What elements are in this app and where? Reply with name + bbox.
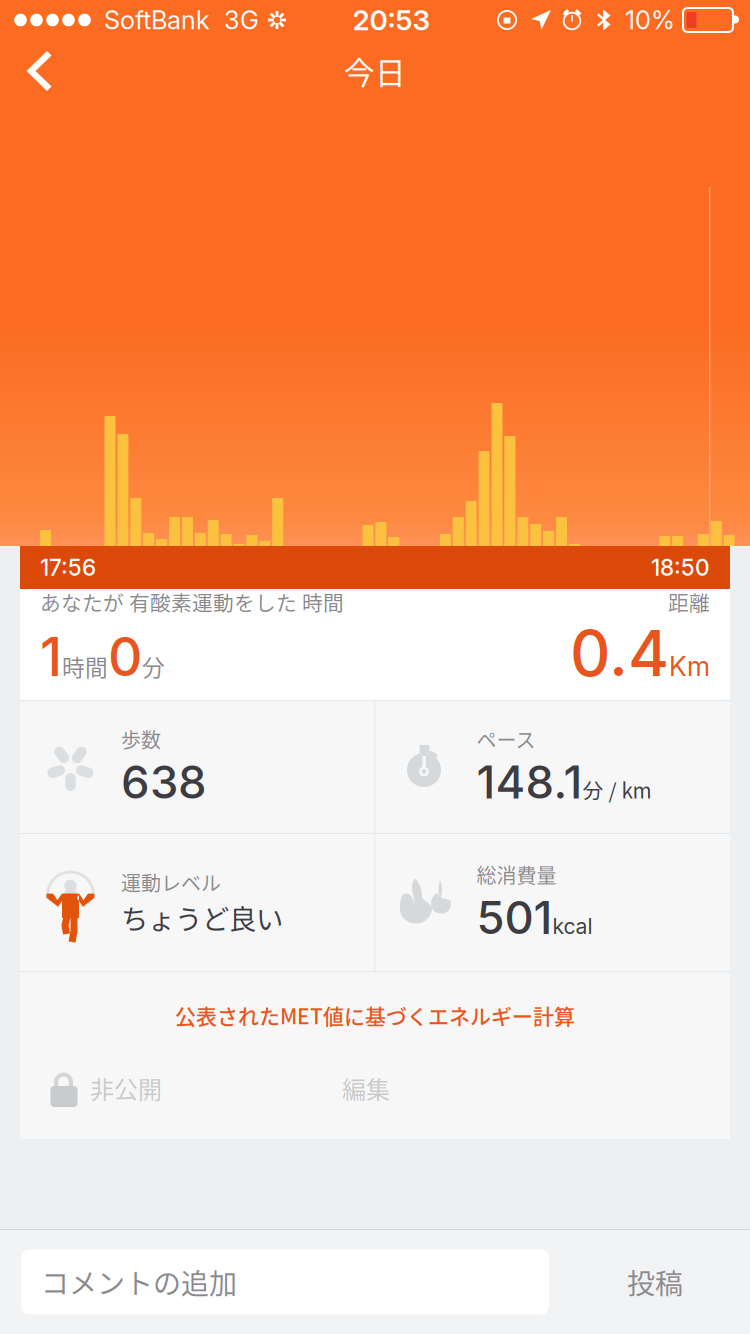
staticText: 距離: [668, 587, 710, 617]
staticText: ちょうど良い: [121, 898, 283, 937]
staticText: 10%: [625, 5, 675, 35]
staticText: 0.4: [570, 615, 669, 691]
staticText: 今日: [344, 49, 406, 93]
staticText: 0: [108, 624, 142, 689]
staticText: 歩数: [121, 725, 161, 754]
button[interactable]: コメントの追加: [21, 1249, 549, 1314]
staticText: ペース: [476, 725, 535, 754]
staticText: 17:56: [40, 554, 96, 581]
button[interactable]: 戻る: [0, 41, 76, 101]
staticText: 総消費量: [476, 860, 556, 889]
staticText: 分 / km: [582, 774, 651, 804]
staticText: 3G: [224, 5, 259, 35]
staticText: 1: [40, 624, 62, 689]
staticText: コメントの追加: [41, 1262, 237, 1302]
staticText: 638: [121, 755, 207, 809]
staticText: 運動レベル: [121, 868, 221, 897]
staticText: 非公開: [90, 1071, 162, 1105]
staticText: 18:50: [651, 554, 710, 581]
staticText: Km: [669, 650, 710, 682]
button[interactable]: 編集: [332, 1065, 400, 1111]
staticText: SoftBank: [104, 5, 210, 35]
staticText: 投稿: [627, 1262, 683, 1302]
staticText: 時間: [62, 650, 108, 682]
staticText: 20:53: [352, 3, 430, 37]
staticText: 公表されたMET値に基づくエネルギー計算: [175, 1000, 575, 1030]
staticText: 148.1: [476, 755, 582, 809]
button[interactable]: 投稿: [585, 1249, 725, 1314]
button[interactable]: 非公開: [20, 1063, 162, 1113]
staticText: あなたが 有酸素運動をした 時間: [40, 587, 344, 617]
staticText: 501: [476, 890, 552, 945]
staticText: 分: [142, 650, 165, 682]
staticText: 編集: [342, 1071, 390, 1105]
staticText: kcal: [552, 913, 592, 939]
